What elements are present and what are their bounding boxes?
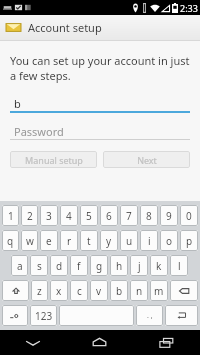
staticText: i	[148, 234, 151, 248]
staticText: . ,	[147, 311, 153, 321]
button[interactable]: 2	[20, 203, 39, 228]
staticText: p	[186, 234, 193, 248]
button[interactable]: 123	[29, 303, 58, 328]
button[interactable]: q	[1, 228, 20, 253]
staticText: m	[154, 284, 164, 298]
staticText: 0	[186, 209, 192, 223]
staticText: 7	[126, 209, 132, 223]
staticText: 4	[66, 209, 72, 223]
button[interactable]: z	[30, 278, 49, 303]
staticText: a	[17, 259, 23, 273]
staticText: 6	[106, 209, 112, 223]
button[interactable]: p	[179, 228, 199, 253]
button[interactable]: h	[109, 253, 129, 278]
button[interactable]: m	[149, 278, 169, 303]
staticText: n	[136, 284, 143, 298]
button[interactable]: Shift	[1, 278, 30, 303]
button[interactable]: s	[29, 253, 49, 278]
button[interactable]: t	[79, 228, 99, 253]
staticText: o	[166, 234, 173, 248]
staticText: Password	[14, 124, 64, 139]
button[interactable]: Manual setup	[10, 151, 97, 168]
staticText: f	[77, 259, 81, 273]
button[interactable]: Hide keyboard	[0, 330, 66, 355]
button[interactable]: v	[89, 278, 109, 303]
button[interactable]: 9	[159, 203, 179, 228]
staticText: v	[96, 284, 102, 298]
button[interactable]: j	[129, 253, 149, 278]
button[interactable]: Password	[10, 123, 190, 139]
staticText: Manual setup	[25, 154, 83, 166]
staticText: r	[67, 234, 72, 248]
staticText: g	[96, 259, 103, 273]
button[interactable]: n	[129, 278, 149, 303]
button[interactable]: e	[39, 228, 59, 253]
button[interactable]: 4	[59, 203, 79, 228]
button[interactable]: a	[10, 253, 29, 278]
button[interactable]: c	[69, 278, 89, 303]
button[interactable]: o	[159, 228, 179, 253]
button[interactable]: 8	[139, 203, 159, 228]
staticText: c	[77, 284, 82, 298]
staticText: q	[7, 234, 14, 248]
button[interactable]: 5	[79, 203, 99, 228]
staticText: 5	[86, 209, 92, 223]
staticText: u	[126, 234, 133, 248]
staticText: b	[116, 284, 123, 298]
button[interactable]: Space	[58, 303, 135, 328]
staticText: x	[56, 284, 62, 298]
staticText: z	[37, 284, 42, 298]
button[interactable]: 3	[39, 203, 59, 228]
staticText: Account setup	[28, 20, 102, 35]
button[interactable]: Home	[66, 330, 133, 355]
button[interactable]: d	[49, 253, 69, 278]
staticText: 8	[146, 209, 152, 223]
button[interactable]: u	[119, 228, 139, 253]
button[interactable]: g	[89, 253, 109, 278]
staticText: 1	[8, 209, 14, 223]
button[interactable]: f	[69, 253, 89, 278]
button[interactable]: r	[59, 228, 79, 253]
staticText: j	[138, 259, 141, 273]
button[interactable]: 0	[179, 203, 199, 228]
button[interactable]: y	[99, 228, 119, 253]
staticText: k	[156, 259, 162, 273]
staticText: y	[106, 234, 112, 248]
button[interactable]: Next	[103, 151, 190, 168]
staticText: 2	[27, 209, 33, 223]
button[interactable]: . ,	[135, 303, 164, 328]
button[interactable]: Recent apps	[133, 330, 200, 355]
staticText: t	[87, 234, 91, 248]
button[interactable]: b	[109, 278, 129, 303]
staticText: 2:33	[180, 2, 198, 14]
staticText: w	[26, 234, 34, 248]
staticText: b	[14, 96, 21, 111]
staticText: h	[116, 259, 123, 273]
staticText: s	[37, 259, 42, 273]
button[interactable]: 7	[119, 203, 139, 228]
staticText: Next	[137, 154, 157, 166]
button[interactable]: k	[149, 253, 169, 278]
button[interactable]: 1	[1, 203, 20, 228]
button[interactable]: Backspace	[169, 278, 199, 303]
button[interactable]: 6	[99, 203, 119, 228]
staticText: You can set up your account in just a fe…	[10, 53, 190, 83]
staticText: d	[56, 259, 63, 273]
button[interactable]: b	[10, 95, 190, 111]
staticText: 9	[166, 209, 172, 223]
staticText: 123	[35, 309, 53, 323]
button[interactable]: i	[139, 228, 159, 253]
button[interactable]: w	[20, 228, 39, 253]
button[interactable]: l	[169, 253, 189, 278]
staticText: l	[178, 259, 181, 273]
button[interactable]: Enter	[164, 303, 199, 328]
button[interactable]: Input options	[1, 303, 29, 328]
staticText: 3	[46, 209, 52, 223]
button[interactable]: x	[49, 278, 69, 303]
staticText: e	[46, 234, 52, 248]
